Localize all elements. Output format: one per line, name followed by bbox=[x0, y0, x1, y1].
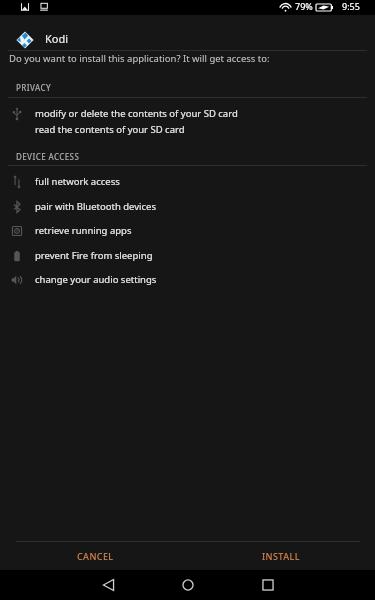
staticText: INSTALL bbox=[262, 550, 300, 562]
button[interactable]: Back bbox=[88, 570, 129, 600]
staticText: PRIVACY bbox=[16, 82, 51, 93]
button[interactable]: pair with Bluetooth devices bbox=[0, 200, 375, 223]
staticText: modify or delete the contents of your SD… bbox=[35, 107, 238, 120]
staticText: prevent Fire from sleeping bbox=[35, 249, 153, 262]
staticText: DEVICE ACCESS bbox=[16, 151, 80, 162]
button[interactable]: change your audio settings bbox=[0, 273, 375, 296]
button[interactable]: Home bbox=[167, 570, 208, 600]
staticText: Kodi bbox=[45, 31, 69, 46]
button[interactable]: retrieve running apps bbox=[0, 224, 375, 247]
staticText: full network access bbox=[35, 175, 120, 188]
staticText: read the contents of your SD card bbox=[35, 123, 185, 136]
button[interactable]: full network access bbox=[0, 175, 375, 198]
staticText: CANCEL bbox=[77, 550, 114, 562]
staticText: 79% bbox=[295, 0, 313, 12]
staticText: Do you want to install this application?… bbox=[9, 52, 270, 65]
button[interactable]: modify or delete the contents of your SD… bbox=[0, 107, 375, 145]
staticText: change your audio settings bbox=[35, 273, 157, 286]
staticText: retrieve running apps bbox=[35, 224, 132, 237]
button[interactable]: Recents bbox=[247, 570, 288, 600]
button[interactable]: INSTALL bbox=[187, 542, 375, 570]
staticText: pair with Bluetooth devices bbox=[35, 200, 157, 213]
button[interactable]: CANCEL bbox=[2, 542, 189, 570]
button[interactable]: prevent Fire from sleeping bbox=[0, 249, 375, 272]
staticText: 9:55 bbox=[342, 0, 360, 12]
